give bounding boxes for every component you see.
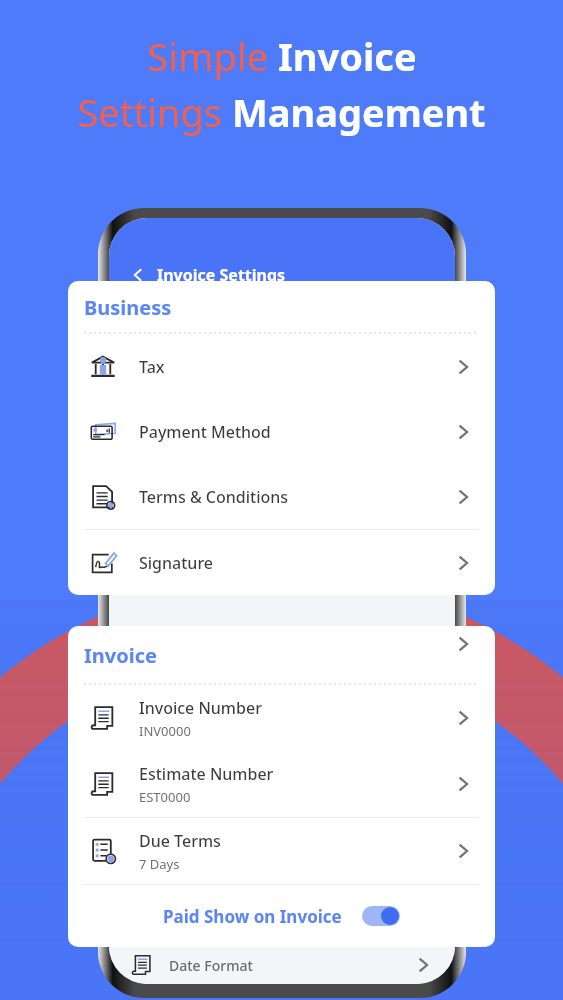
button[interactable]: Paid Show on Invoice [68,885,495,947]
staticText: 7 Days [139,855,180,873]
staticText: Signature [139,552,214,574]
button[interactable]: Estimate Number [68,751,495,817]
staticText: INV0000 [139,722,191,740]
staticText: Tax [139,356,165,378]
staticText: Invoice [137,320,196,342]
staticText: Simple Invoice [147,30,417,82]
staticText: Invoice Number [137,371,243,390]
staticText: Settings Management [77,86,486,138]
button[interactable]: Invoice [68,626,495,684]
button[interactable]: Back [129,264,286,286]
staticText: Due Terms [139,830,221,852]
staticText: Terms & Conditions [139,486,289,508]
button[interactable]: Date Format [131,954,433,976]
button[interactable]: Business [68,281,495,333]
button[interactable]: Tax [68,334,495,399]
staticText: Date Format [169,956,413,975]
button[interactable]: Payment Method [68,399,495,464]
staticText: Invoice Settings [157,264,286,286]
staticText: EST0000 [139,788,191,806]
button[interactable]: Terms & Conditions [68,464,495,529]
staticText: Invoice [84,642,157,669]
staticText: Business [84,294,172,321]
staticText: Estimate Number [139,763,274,785]
button[interactable]: Signature [68,530,495,595]
button[interactable]: Invoice Number [68,685,495,751]
staticText: Payment Method [139,421,271,443]
staticText: Paid Show on Invoice [163,905,342,928]
button[interactable]: Due Terms [68,818,495,884]
staticText: Invoice Number [139,697,262,719]
